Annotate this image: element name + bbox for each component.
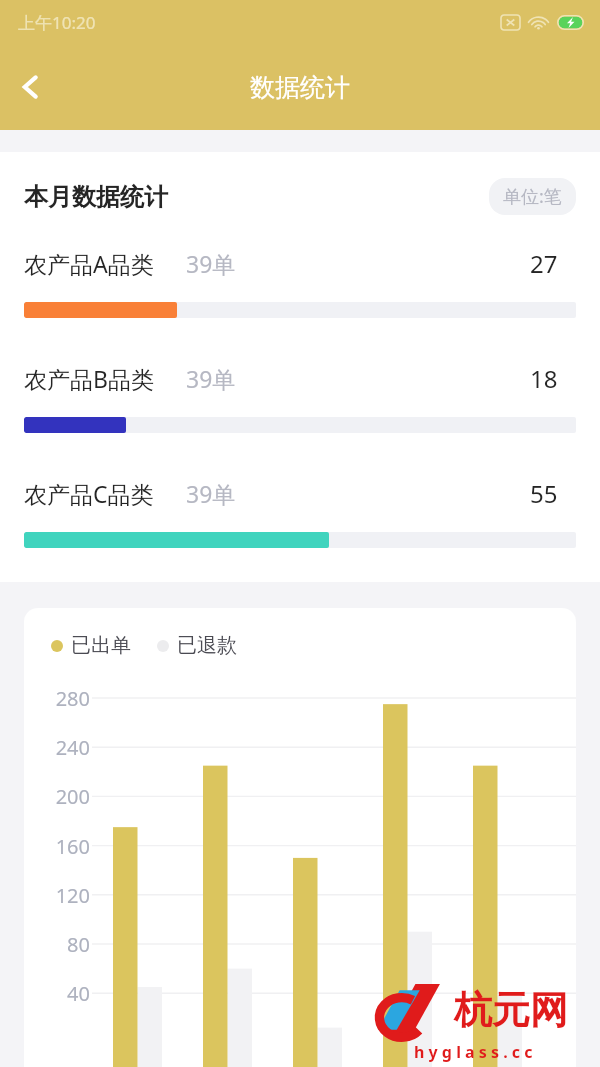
staticText: 80 [40,931,90,958]
button[interactable]: 已退款 [157,633,237,658]
staticText: 200 [40,783,90,810]
staticText: 上午10:20 [18,11,96,34]
staticText: 杭元网 [454,986,568,1034]
staticText: 280 [40,685,90,712]
button[interactable]: 农产品B品类 [0,362,600,433]
staticText: 40 [40,980,90,1007]
button[interactable]: 单位:笔 [489,178,576,215]
staticText: 18 [530,362,576,395]
staticText: 农产品C品类 [24,478,154,509]
button[interactable]: 返回 [0,56,62,118]
staticText: 39单 [186,248,236,279]
staticText: 本月数据统计 [24,182,168,212]
staticText: 39单 [186,478,236,509]
staticText: h y g l a s s . c c [414,1041,533,1063]
staticText: 单位:笔 [503,184,562,209]
staticText: 农产品A品类 [24,248,154,279]
staticText: 55 [530,477,576,510]
staticText: 已退款 [177,633,237,658]
staticText: 27 [530,247,576,280]
staticText: 39单 [186,363,236,394]
staticText: 120 [40,882,90,909]
staticText: 160 [40,833,90,860]
button[interactable]: 农产品C品类 [0,477,600,548]
staticText: 已出单 [71,633,131,658]
button[interactable]: 农产品A品类 [0,247,600,318]
staticText: 240 [40,734,90,761]
staticText: 数据统计 [250,72,350,103]
button[interactable]: 已出单 [51,633,131,658]
staticText: 农产品B品类 [24,363,154,394]
